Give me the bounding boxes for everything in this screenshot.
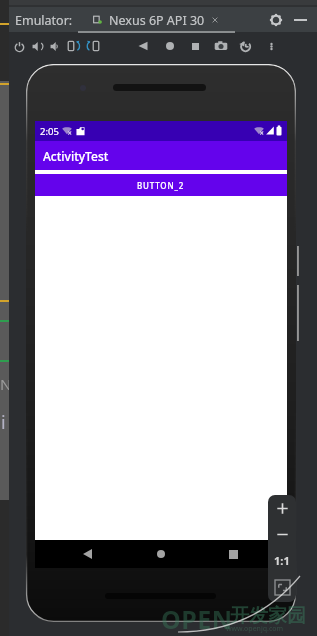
button[interactable]: Settings [266, 10, 285, 29]
staticText: 开发家园 [230, 604, 306, 628]
button[interactable]: Home [164, 35, 176, 57]
staticText: OPEN [161, 602, 233, 636]
button[interactable]: Rotate right [85, 35, 101, 57]
staticText: 2:05 [40, 125, 59, 138]
staticText: ActivityTest [43, 148, 109, 164]
button[interactable]: Actual size [268, 547, 296, 573]
button[interactable]: More [266, 35, 277, 57]
button[interactable]: Volume up [30, 35, 45, 57]
button[interactable]: Zoom in [268, 495, 296, 521]
button[interactable]: Screenshot [212, 35, 230, 57]
button[interactable]: Record screen [237, 35, 254, 57]
button[interactable]: Volume down [48, 35, 63, 57]
button[interactable]: Zoom out [268, 521, 296, 547]
button[interactable]: Power [12, 35, 27, 57]
staticText: N [0, 374, 9, 394]
staticText: BUTTON_2 [137, 180, 185, 191]
staticText: Emulator: [15, 12, 73, 29]
staticText: 1:1 [274, 553, 290, 568]
staticText: Nexus 6P API 30 [109, 12, 205, 29]
button[interactable]: BUTTON_2 [35, 174, 287, 196]
button[interactable]: Back [136, 35, 150, 57]
button[interactable]: Close tab [207, 12, 222, 27]
staticText: www.openjq.com [226, 624, 284, 634]
button[interactable]: Home [151, 544, 171, 564]
button[interactable]: Recents [223, 544, 243, 564]
staticText: i [1, 410, 6, 435]
button[interactable]: Back [77, 544, 97, 564]
button[interactable]: Overview [190, 35, 201, 57]
button[interactable]: Fit to window [268, 573, 296, 602]
button[interactable]: Minimize [291, 10, 310, 29]
button[interactable]: Rotate left [66, 35, 82, 57]
